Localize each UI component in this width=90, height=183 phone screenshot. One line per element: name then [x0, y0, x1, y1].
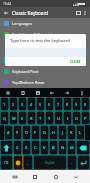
staticText: Top/Bottom Rows	[12, 80, 45, 85]
staticText: P	[84, 116, 87, 121]
staticText: 7	[57, 102, 60, 107]
button[interactable]: S	[13, 125, 22, 140]
staticText: ?12	[4, 161, 9, 165]
staticText: Keyboard Font	[12, 69, 39, 74]
button[interactable]: Languages	[0, 18, 90, 29]
staticText: 3	[21, 102, 24, 107]
button[interactable]: ,	[23, 155, 33, 170]
button[interactable]: Q	[0, 111, 9, 125]
staticText: 10:44	[3, 2, 12, 6]
staticText: Predictions & Corrections	[12, 32, 59, 37]
button[interactable]: Back	[69, 170, 82, 183]
button[interactable]: D	[22, 125, 31, 140]
button[interactable]: 9	[72, 97, 81, 111]
button[interactable]: Key Size	[0, 55, 90, 66]
button[interactable]: 7	[54, 97, 63, 111]
staticText: U	[57, 116, 60, 121]
staticText: V	[43, 145, 46, 150]
button[interactable]: .	[67, 155, 77, 170]
button[interactable]: Move left	[48, 89, 56, 97]
staticText: X	[25, 145, 28, 150]
button[interactable]: 8	[63, 97, 72, 111]
button[interactable]: key	[77, 155, 90, 170]
button[interactable]: key	[13, 155, 23, 170]
button[interactable]: 2	[9, 97, 18, 111]
button[interactable]: W	[9, 111, 18, 125]
button[interactable]: C	[31, 140, 40, 155]
staticText: Languages	[12, 21, 33, 26]
staticText: R	[30, 116, 33, 121]
staticText: 5	[39, 102, 42, 107]
button[interactable]: Top/Bottom Rows	[0, 77, 90, 88]
staticText: Y	[48, 116, 51, 121]
button[interactable]: Themes	[34, 89, 42, 97]
button[interactable]: K	[67, 125, 76, 140]
staticText: 8	[66, 102, 69, 107]
button[interactable]: V	[40, 140, 49, 155]
button[interactable]: P	[81, 111, 90, 125]
button[interactable]: More options	[82, 10, 88, 16]
staticText: 9	[75, 102, 78, 107]
staticText: S	[16, 130, 19, 135]
staticText: English	[45, 161, 55, 165]
staticText: W	[12, 116, 16, 121]
button[interactable]: Hide keyboard	[8, 170, 21, 183]
button[interactable]: Settings	[4, 89, 12, 97]
button[interactable]: Move right	[63, 89, 71, 97]
button[interactable]: L	[76, 125, 85, 140]
button[interactable]: B	[49, 140, 58, 155]
button[interactable]: Y	[45, 111, 54, 125]
staticText: J	[62, 130, 64, 135]
button[interactable]: T	[36, 111, 45, 125]
staticText: A	[7, 130, 10, 135]
button[interactable]: F	[31, 125, 40, 140]
staticText: 0	[84, 102, 87, 107]
button[interactable]: N	[58, 140, 67, 155]
staticText: G	[43, 130, 46, 135]
button[interactable]: G	[40, 125, 49, 140]
button[interactable]: 4	[27, 97, 36, 111]
button[interactable]: key	[0, 140, 13, 155]
button[interactable]: 6	[45, 97, 54, 111]
button[interactable]: O	[72, 111, 81, 125]
button[interactable]: Back	[2, 9, 10, 17]
button[interactable]: ?12	[0, 155, 13, 170]
button[interactable]: E	[18, 111, 27, 125]
button[interactable]: R	[27, 111, 36, 125]
staticText: Z	[16, 145, 19, 150]
button[interactable]: CLOSE	[68, 58, 83, 65]
button[interactable]: Recent apps	[28, 170, 41, 183]
staticText: Type here to test the keyboard	[10, 38, 70, 44]
button[interactable]: 1	[0, 97, 9, 111]
button[interactable]: Home	[49, 170, 62, 183]
staticText: Q	[3, 116, 7, 121]
button[interactable]: key	[76, 140, 90, 155]
button[interactable]: Preview keyboard	[74, 9, 82, 17]
button[interactable]: U	[54, 111, 63, 125]
button[interactable]: 3	[18, 97, 27, 111]
button[interactable]: I	[63, 111, 72, 125]
button[interactable]: Voice input	[78, 89, 86, 97]
staticText: ,	[27, 160, 29, 165]
button[interactable]: English	[33, 155, 67, 170]
staticText: M	[70, 145, 74, 150]
staticText: O	[75, 116, 79, 121]
staticText: 4	[30, 102, 33, 107]
button[interactable]: A	[4, 125, 13, 140]
button[interactable]: 5	[36, 97, 45, 111]
staticText: N	[61, 145, 65, 150]
staticText: Classic Keyboard	[12, 10, 49, 16]
button[interactable]: X	[22, 140, 31, 155]
button[interactable]: M	[67, 140, 76, 155]
staticText: I	[67, 116, 69, 121]
staticText: D	[25, 130, 28, 135]
button[interactable]: 0	[81, 97, 90, 111]
button[interactable]: Clipboard	[19, 89, 27, 97]
button[interactable]: Keyboard Font	[0, 66, 90, 77]
button[interactable]: Predictions & Corrections	[0, 29, 90, 40]
button[interactable]: Z	[13, 140, 22, 155]
button[interactable]: H	[49, 125, 58, 140]
button[interactable]: J	[58, 125, 67, 140]
staticText: CLOSE	[70, 59, 81, 64]
